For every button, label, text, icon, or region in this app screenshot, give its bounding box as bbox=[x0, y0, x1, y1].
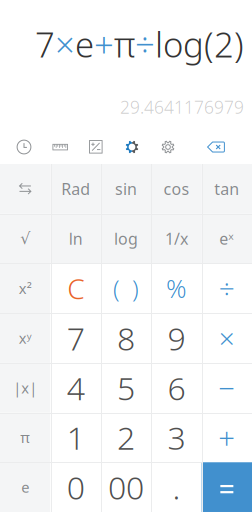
staticText: − bbox=[218, 368, 235, 407]
button[interactable]: eˣ bbox=[202, 214, 252, 263]
staticText: × bbox=[219, 319, 235, 357]
staticText: x² bbox=[19, 279, 32, 298]
staticText: ÷ bbox=[135, 21, 155, 67]
button[interactable]: π bbox=[0, 413, 50, 462]
staticText: . bbox=[172, 466, 180, 508]
button[interactable]: Settings bbox=[154, 130, 182, 164]
staticText: log bbox=[114, 228, 138, 249]
staticText: 5 bbox=[117, 366, 135, 409]
staticText: 29.4641176979 bbox=[120, 95, 244, 118]
button[interactable]: ln bbox=[50, 214, 101, 263]
button[interactable]: Equals bbox=[202, 462, 252, 512]
staticText: 8 bbox=[117, 317, 135, 359]
button[interactable]: 7 bbox=[50, 313, 101, 363]
staticText: π bbox=[20, 428, 30, 447]
staticText: 7 bbox=[67, 317, 85, 359]
button[interactable]: Appearance bbox=[118, 130, 146, 164]
staticText: 3 bbox=[167, 416, 185, 459]
button[interactable]: − bbox=[202, 363, 252, 413]
button[interactable]: 0 bbox=[50, 462, 101, 512]
button[interactable]: C bbox=[50, 263, 101, 313]
staticText: xʸ bbox=[19, 328, 32, 348]
button[interactable]: 3 bbox=[151, 413, 202, 462]
staticText: e bbox=[75, 21, 94, 67]
staticText: 1/x bbox=[165, 228, 188, 249]
staticText: C bbox=[67, 270, 84, 307]
staticText: π bbox=[114, 21, 135, 67]
staticText: 9 bbox=[167, 317, 185, 359]
staticText: cos bbox=[163, 178, 189, 199]
button[interactable]: Rad bbox=[50, 164, 101, 214]
button[interactable]: × bbox=[202, 313, 252, 363]
staticText: 0 bbox=[67, 466, 85, 508]
staticText: 00 bbox=[108, 466, 144, 508]
button[interactable]: cos bbox=[151, 164, 202, 214]
staticText: ÷ bbox=[219, 270, 235, 307]
staticText: 6 bbox=[167, 366, 185, 409]
staticText: × bbox=[55, 21, 75, 67]
staticText: % bbox=[166, 271, 187, 305]
button[interactable]: Delete bbox=[201, 130, 231, 164]
button[interactable]: 9 bbox=[151, 313, 202, 363]
button[interactable]: 4 bbox=[50, 363, 101, 413]
staticText: eˣ bbox=[219, 228, 234, 249]
button[interactable]: |x| bbox=[0, 363, 50, 413]
button[interactable]: tan bbox=[202, 164, 252, 214]
button[interactable]: e bbox=[0, 462, 50, 512]
staticText: |x| bbox=[13, 378, 37, 397]
button[interactable]: 00 bbox=[101, 462, 151, 512]
button[interactable]: log bbox=[101, 214, 151, 263]
staticText: 4 bbox=[67, 366, 85, 409]
staticText: 2 bbox=[117, 416, 135, 459]
staticText: ( ) bbox=[113, 272, 139, 304]
staticText: 1 bbox=[67, 416, 85, 459]
button[interactable]: 1 bbox=[50, 413, 101, 462]
button[interactable]: 5 bbox=[101, 363, 151, 413]
button[interactable]: ÷ bbox=[202, 263, 252, 313]
button[interactable]: Sign bbox=[82, 130, 110, 164]
button[interactable]: . bbox=[151, 462, 202, 512]
button[interactable]: History bbox=[10, 130, 38, 164]
staticText: 7 bbox=[35, 21, 55, 67]
button[interactable]: xʸ bbox=[0, 313, 50, 363]
staticText: + bbox=[94, 21, 114, 67]
button[interactable]: x² bbox=[0, 263, 50, 313]
staticText: sin bbox=[115, 178, 137, 199]
staticText: log(2) bbox=[155, 21, 244, 67]
button[interactable]: √ bbox=[0, 214, 50, 263]
staticText: √ bbox=[20, 229, 30, 248]
button[interactable]: 1/x bbox=[151, 214, 202, 263]
staticText: Rad bbox=[61, 178, 90, 199]
staticText: e bbox=[21, 477, 29, 497]
staticText: ln bbox=[69, 228, 83, 249]
button[interactable]: ( ) bbox=[101, 263, 151, 313]
staticText: tan bbox=[214, 178, 239, 199]
staticText: + bbox=[218, 418, 235, 457]
button[interactable]: + bbox=[202, 413, 252, 462]
button[interactable]: 2 bbox=[101, 413, 151, 462]
button[interactable]: sin bbox=[101, 164, 151, 214]
button[interactable]: % bbox=[151, 263, 202, 313]
button[interactable]: 6 bbox=[151, 363, 202, 413]
button[interactable]: Swap bbox=[0, 164, 50, 214]
button[interactable]: Unit converter bbox=[46, 130, 74, 164]
button[interactable]: 8 bbox=[101, 313, 151, 363]
